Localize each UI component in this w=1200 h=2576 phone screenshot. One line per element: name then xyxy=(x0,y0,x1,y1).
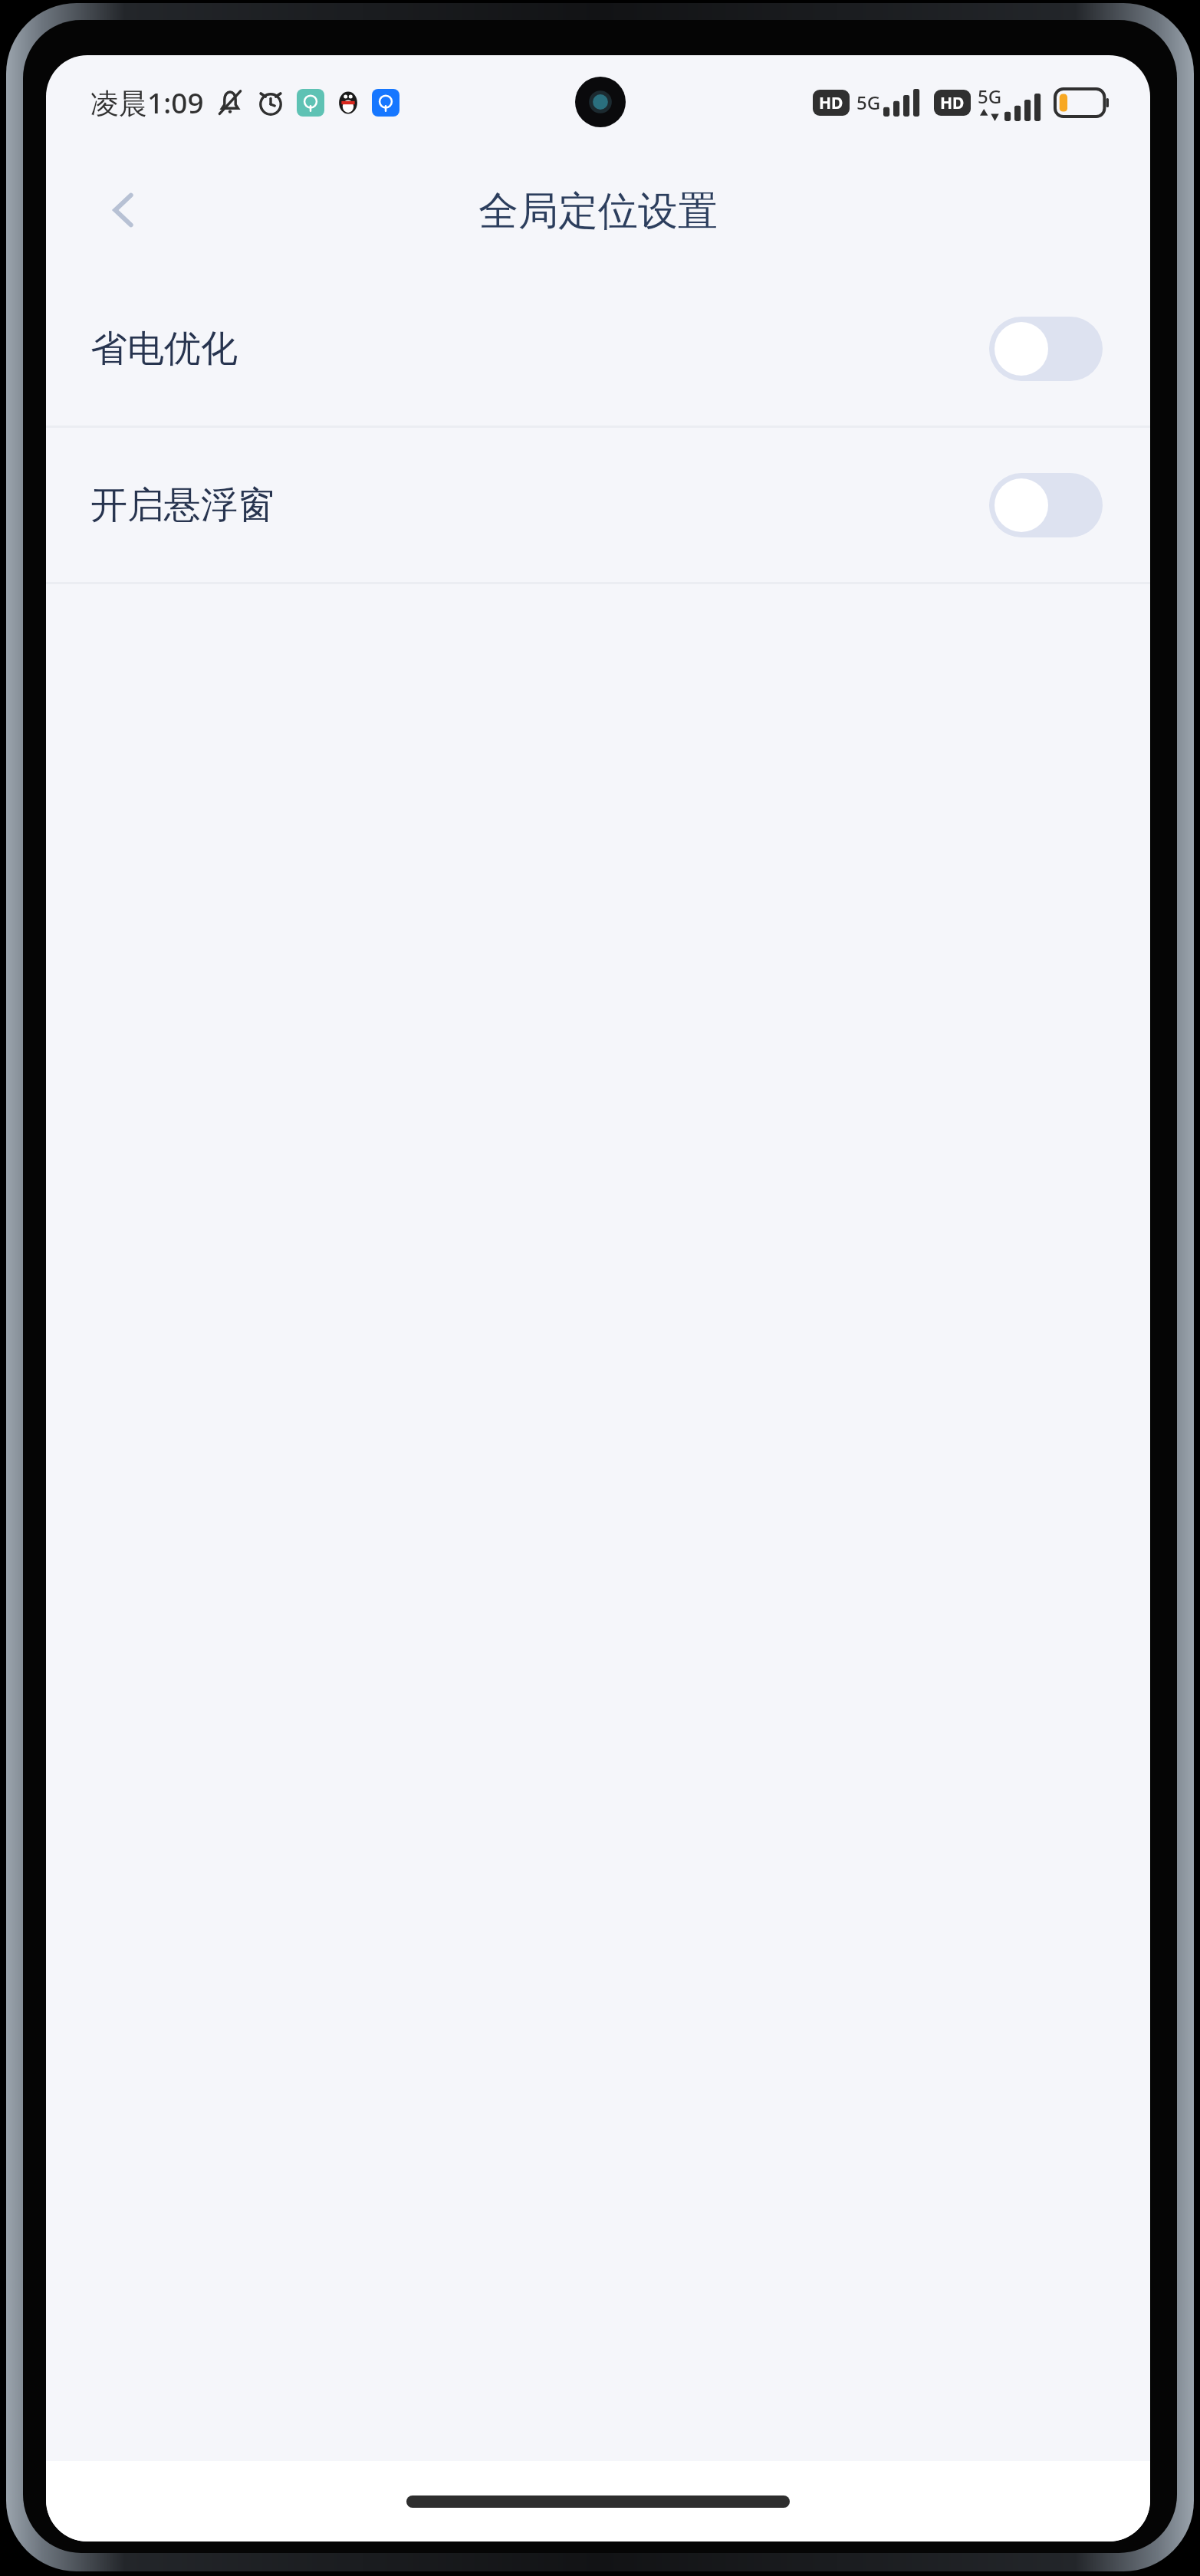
staticText: 省电优化 xyxy=(90,326,238,372)
staticText: 全局定位设置 xyxy=(478,186,718,237)
staticText: HD xyxy=(940,92,965,114)
staticText: 凌晨1:09 xyxy=(90,83,204,122)
button[interactable]: 省电优化 xyxy=(46,271,1150,426)
button[interactable]: 开关 xyxy=(989,317,1103,381)
button[interactable]: 返回 xyxy=(90,177,156,243)
staticText: 5G xyxy=(856,90,881,115)
button[interactable]: 开启悬浮窗 xyxy=(46,428,1150,582)
button[interactable]: 开关 xyxy=(989,473,1103,537)
staticText: 5G xyxy=(978,84,1002,109)
staticText: 开启悬浮窗 xyxy=(90,482,275,528)
staticText: HD xyxy=(819,92,843,114)
